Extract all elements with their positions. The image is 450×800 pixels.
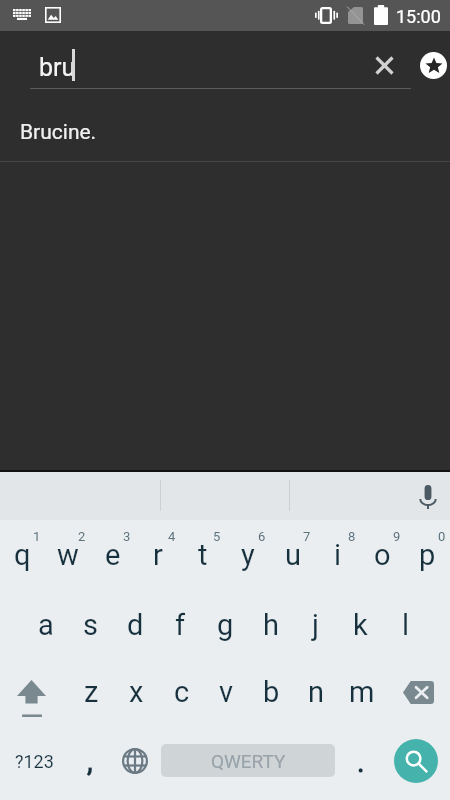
- staticText: u: [285, 538, 301, 572]
- staticText: p: [419, 538, 436, 572]
- button[interactable]: z: [69, 658, 114, 726]
- button[interactable]: g: [203, 590, 248, 658]
- staticText: r: [153, 538, 163, 572]
- staticText: y: [241, 538, 255, 572]
- staticText: k: [353, 608, 368, 642]
- staticText: z: [84, 675, 99, 709]
- staticText: 9: [393, 529, 401, 544]
- staticText: 6: [258, 529, 266, 544]
- staticText: 7: [303, 529, 311, 544]
- button[interactable]: o: [360, 520, 405, 590]
- staticText: w: [57, 538, 79, 572]
- staticText: c: [174, 675, 190, 709]
- staticText: d: [127, 608, 144, 642]
- staticText: o: [374, 538, 391, 572]
- button[interactable]: Voice input: [405, 472, 449, 520]
- button[interactable]: f: [158, 590, 203, 658]
- button[interactable]: p: [405, 520, 450, 590]
- staticText: 8: [348, 529, 356, 544]
- button[interactable]: l: [383, 590, 428, 658]
- staticText: 5: [213, 529, 221, 544]
- button[interactable]: Backspace: [383, 658, 450, 726]
- button[interactable]: QWERTY: [161, 744, 335, 777]
- staticText: 1: [33, 529, 41, 544]
- staticText: 2: [78, 529, 86, 544]
- staticText: a: [38, 608, 54, 642]
- staticText: 4: [168, 529, 176, 544]
- button[interactable]: q: [0, 520, 45, 590]
- staticText: 0: [438, 529, 446, 544]
- button[interactable]: Search: [394, 739, 438, 783]
- button[interactable]: i: [315, 520, 360, 590]
- staticText: 3: [123, 529, 131, 544]
- button[interactable]: c: [159, 658, 204, 726]
- button[interactable]: u: [270, 520, 315, 590]
- button[interactable]: j: [293, 590, 338, 658]
- button[interactable]: a: [23, 590, 68, 658]
- button[interactable]: r: [135, 520, 180, 590]
- staticText: s: [83, 608, 98, 642]
- staticText: i: [334, 538, 342, 572]
- button[interactable]: .: [338, 726, 384, 800]
- staticText: x: [129, 675, 144, 709]
- staticText: t: [198, 538, 208, 572]
- button[interactable]: k: [338, 590, 383, 658]
- button[interactable]: s: [68, 590, 113, 658]
- button[interactable]: e: [90, 520, 135, 590]
- staticText: h: [263, 608, 279, 642]
- button[interactable]: Switch keyboard language: [112, 726, 158, 800]
- staticText: n: [308, 675, 325, 709]
- button[interactable]: Favorites: [420, 52, 447, 79]
- staticText: .: [357, 745, 365, 779]
- button[interactable]: n: [294, 658, 339, 726]
- button[interactable]: y: [225, 520, 270, 590]
- staticText: ,: [87, 744, 93, 778]
- staticText: e: [105, 538, 121, 572]
- staticText: f: [175, 608, 186, 642]
- staticText: l: [402, 608, 410, 642]
- staticText: ?123: [15, 751, 54, 772]
- staticText: m: [349, 675, 375, 709]
- staticText: q: [14, 538, 31, 572]
- button[interactable]: ?123: [0, 726, 68, 800]
- staticText: b: [263, 675, 280, 709]
- staticText: 15:00: [396, 6, 441, 27]
- button[interactable]: x: [114, 658, 159, 726]
- button[interactable]: w: [45, 520, 90, 590]
- button[interactable]: Brucine.: [0, 97, 450, 161]
- staticText: g: [217, 608, 234, 642]
- button[interactable]: Clear query: [362, 43, 407, 88]
- button[interactable]: m: [339, 658, 384, 726]
- button[interactable]: ,: [68, 726, 112, 800]
- button[interactable]: d: [113, 590, 158, 658]
- button[interactable]: Shift: [0, 658, 67, 726]
- staticText: j: [312, 608, 319, 642]
- button[interactable]: b: [249, 658, 294, 726]
- button[interactable]: t: [180, 520, 225, 590]
- button[interactable]: v: [204, 658, 249, 726]
- staticText: bru: [39, 53, 76, 82]
- staticText: Brucine.: [20, 120, 97, 145]
- button[interactable]: h: [248, 590, 293, 658]
- staticText: v: [219, 675, 234, 709]
- staticText: QWERTY: [211, 750, 286, 772]
